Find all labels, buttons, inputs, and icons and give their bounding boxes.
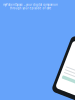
staticText: through your episode of care <box>9 6 51 10</box>
staticText: myPatientSpace – your digital companion <box>3 3 58 6</box>
